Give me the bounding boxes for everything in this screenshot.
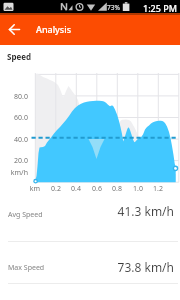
staticText: 0.4 <box>67 184 85 194</box>
staticText: 73% <box>107 3 120 12</box>
staticText: 80.0 <box>0 92 28 102</box>
button[interactable]: Avg Speed <box>0 196 180 241</box>
staticText: 41.3 km/h <box>74 203 174 219</box>
staticText: km/h <box>0 168 28 178</box>
staticText: 1.2 <box>149 184 167 194</box>
staticText: 1:25 PM <box>131 2 177 14</box>
staticText: 0.6 <box>88 184 106 194</box>
staticText: 0.2 <box>47 184 65 194</box>
staticText: Speed <box>7 51 32 62</box>
button[interactable]: Max Speed <box>0 242 180 283</box>
staticText: 0.8 <box>108 184 126 194</box>
staticText: Analysis <box>36 23 72 35</box>
staticText: 1.0 <box>129 184 147 194</box>
staticText: km <box>26 184 44 194</box>
staticText: 60.0 <box>0 113 28 123</box>
staticText: Max Speed <box>8 263 45 273</box>
staticText: Avg Speed <box>8 210 43 220</box>
staticText: 20.0 <box>0 156 28 166</box>
staticText: 73.8 km/h <box>74 259 174 275</box>
staticText: 40.0 <box>0 135 28 145</box>
button[interactable] <box>8 24 22 36</box>
